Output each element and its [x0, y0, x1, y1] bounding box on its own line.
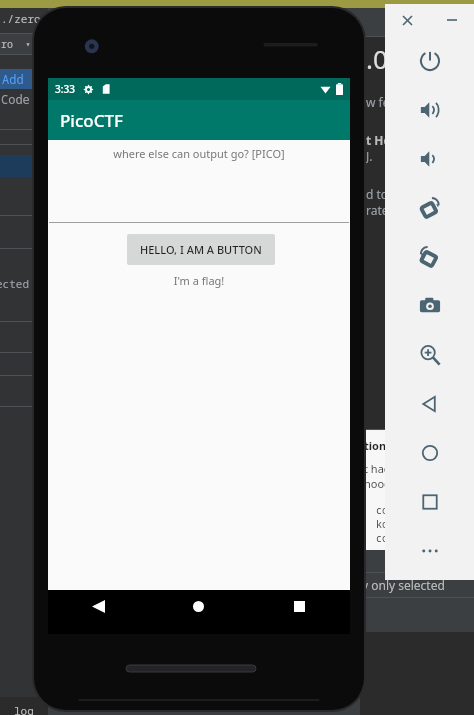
button[interactable]: Back	[385, 379, 474, 428]
button[interactable]: Home	[148, 590, 249, 634]
button[interactable]: Take screenshot	[385, 281, 474, 330]
staticText: com	[376, 503, 394, 517]
staticText: where else can output go? [PICO]	[48, 146, 350, 161]
staticText: w fe	[366, 94, 390, 110]
staticText: .0	[366, 41, 388, 76]
button[interactable]: Zoom	[385, 330, 474, 379]
staticText: kotli	[376, 517, 406, 531]
staticText: ro ▾	[1, 37, 31, 51]
button[interactable]: Volume up	[385, 85, 474, 134]
staticText: PicoCTF	[60, 109, 124, 132]
button[interactable]: More	[385, 526, 474, 575]
staticText: J.	[366, 148, 373, 164]
staticText: 3:33	[55, 82, 75, 96]
button[interactable]: Recent apps	[249, 590, 350, 634]
button[interactable]: Back	[48, 590, 148, 634]
staticText: I'm a flag!	[48, 273, 350, 288]
button[interactable]: Home	[385, 428, 474, 477]
staticText: HELLO, I AM A BUTTON	[140, 242, 262, 257]
staticText: rate	[366, 202, 389, 218]
staticText: Code	[1, 91, 30, 107]
staticText: t had	[364, 461, 391, 476]
button[interactable]: Rotate left	[385, 183, 474, 232]
staticText: ./zero	[1, 11, 41, 26]
button[interactable]: Minimize	[429, 4, 474, 36]
staticText: tion (S	[364, 438, 399, 453]
button[interactable]: Recent apps	[385, 477, 474, 526]
staticText: d to	[366, 186, 389, 202]
staticText: Add	[2, 71, 24, 87]
button[interactable]: Power	[385, 36, 474, 85]
staticText: ected	[0, 276, 29, 291]
staticText: t He	[366, 132, 391, 148]
button[interactable]: Rotate right	[385, 232, 474, 281]
staticText: com	[376, 531, 394, 545]
button[interactable]: HELLO, I AM A BUTTON	[127, 234, 275, 265]
staticText: v only selected	[362, 577, 445, 593]
button[interactable]: Close	[385, 4, 429, 36]
staticText: hood	[364, 476, 391, 491]
staticText: log	[14, 703, 34, 715]
button[interactable]: Volume down	[385, 134, 474, 183]
